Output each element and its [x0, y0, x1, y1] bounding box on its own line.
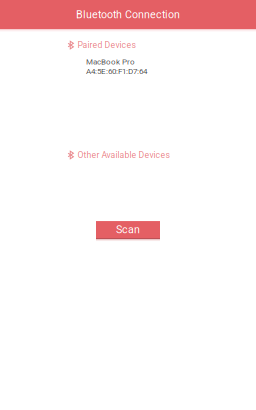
staticText: Scan	[116, 223, 140, 236]
staticText: A4:5E:60:F1:D7:64	[86, 66, 147, 76]
staticText: Bluetooth Connection	[76, 8, 180, 21]
button[interactable]: Scan	[96, 221, 160, 241]
staticText: MacBook Pro	[86, 57, 135, 67]
button[interactable]: MacBook Pro	[86, 57, 147, 76]
staticText: Other Available Devices	[77, 150, 169, 160]
staticText: Paired Devices	[77, 40, 135, 50]
